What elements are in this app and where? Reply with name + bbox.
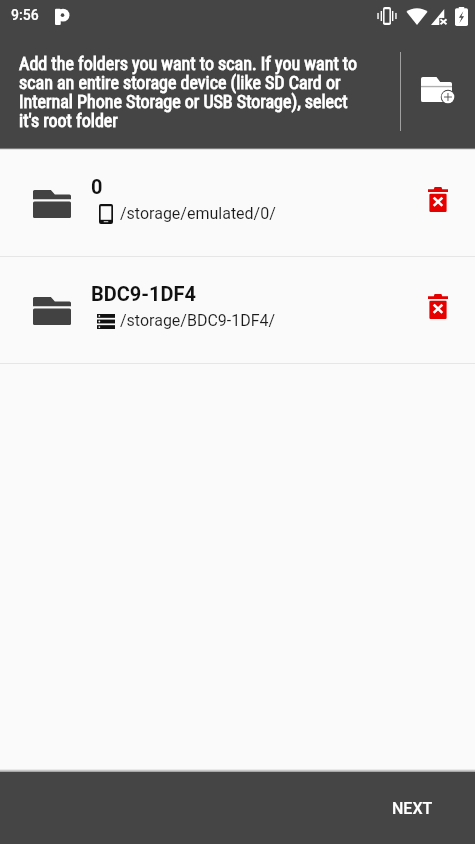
button[interactable]: Remove folder bbox=[414, 175, 462, 223]
button[interactable]: Remove folder bbox=[414, 282, 462, 330]
staticText: BDC9-1DF4 bbox=[91, 282, 197, 305]
staticText: 9:56 bbox=[11, 7, 39, 23]
staticText: Add the folders you want to scan. If you… bbox=[19, 53, 367, 131]
staticText: NEXT bbox=[392, 799, 433, 818]
button[interactable]: BDC9-1DF4 bbox=[0, 257, 475, 363]
staticText: /storage/BDC9-1DF4/ bbox=[120, 311, 276, 330]
button[interactable]: 0 bbox=[0, 150, 475, 256]
staticText: 0 bbox=[91, 175, 103, 198]
button[interactable]: Add folder bbox=[403, 52, 475, 131]
staticText: /storage/emulated/0/ bbox=[120, 204, 276, 223]
button[interactable]: NEXT bbox=[382, 789, 443, 828]
